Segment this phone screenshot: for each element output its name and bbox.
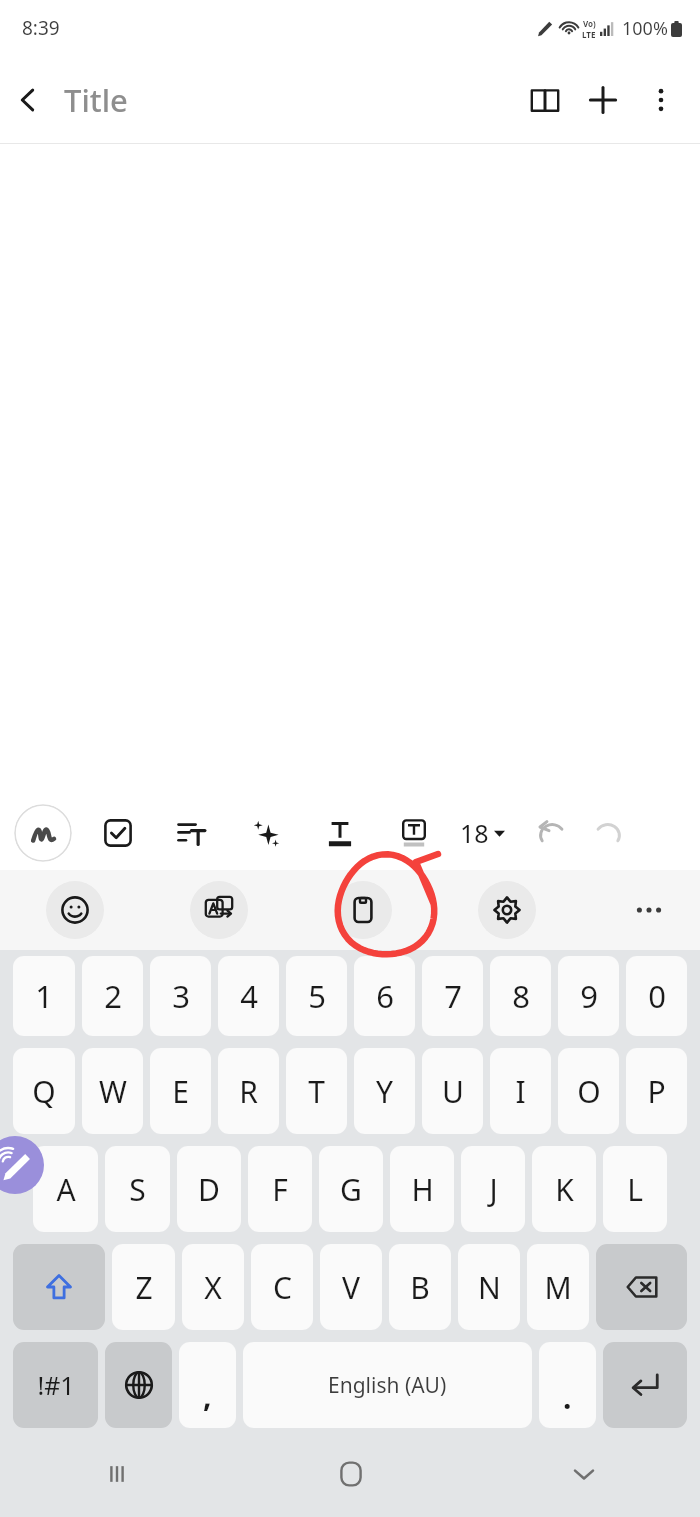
button[interactable]: Translate [190, 881, 248, 939]
staticText: R [239, 1071, 258, 1112]
button[interactable]: W [82, 1048, 143, 1134]
button[interactable]: Undo [527, 808, 577, 858]
button[interactable]: Y [354, 1048, 415, 1134]
staticText: W [99, 1071, 127, 1112]
staticText: L [627, 1169, 643, 1210]
button[interactable]: G [319, 1146, 383, 1232]
staticText: Z [135, 1267, 153, 1308]
button[interactable]: Settings [478, 881, 536, 939]
button[interactable]: Enter [603, 1342, 687, 1428]
button[interactable]: Backspace [596, 1244, 687, 1330]
staticText: S [129, 1169, 146, 1210]
button[interactable]: J [461, 1146, 525, 1232]
staticText: E [172, 1071, 189, 1112]
staticText: D [198, 1169, 220, 1210]
button[interactable]: 0 [626, 956, 687, 1036]
button[interactable]: Shift [13, 1244, 105, 1330]
button[interactable]: A [33, 1146, 98, 1232]
button[interactable]: B [389, 1244, 451, 1330]
button[interactable]: N [458, 1244, 520, 1330]
staticText: P [647, 1071, 666, 1112]
staticText: 6 [376, 975, 394, 1017]
button[interactable]: 6 [354, 956, 415, 1036]
button[interactable]: P [626, 1048, 687, 1134]
button[interactable]: S [105, 1146, 170, 1232]
button[interactable]: V [320, 1244, 382, 1330]
button[interactable]: H [390, 1146, 454, 1232]
button[interactable]: 3 [150, 956, 211, 1036]
button[interactable]: Change language [105, 1342, 172, 1428]
button[interactable]: 9 [558, 956, 619, 1036]
button[interactable]: More options [632, 71, 690, 129]
button[interactable]: Hide keyboard [467, 1430, 700, 1517]
button[interactable]: R [218, 1048, 279, 1134]
staticText: 3 [172, 975, 190, 1017]
button[interactable]: Q [13, 1048, 75, 1134]
button[interactable]: Redo [583, 808, 633, 858]
button[interactable]: Handwriting [14, 804, 72, 862]
staticText: C [273, 1267, 292, 1308]
staticText: 7 [444, 975, 462, 1017]
staticText: K [555, 1169, 574, 1210]
button[interactable]: O [558, 1048, 619, 1134]
button[interactable]: Checklist [92, 807, 144, 859]
staticText: 0 [648, 975, 666, 1017]
button[interactable]: 2 [82, 956, 143, 1036]
staticText: V [342, 1267, 360, 1308]
staticText: 100% [622, 16, 668, 41]
button[interactable]: E [150, 1048, 211, 1134]
button[interactable]: AI assist [240, 807, 292, 859]
button[interactable]: Paragraph [166, 807, 218, 859]
button[interactable]: Z [112, 1244, 175, 1330]
staticText: Title [64, 79, 128, 121]
button[interactable]: D [177, 1146, 241, 1232]
staticText: I [515, 1071, 526, 1112]
staticText: English (AU) [328, 1371, 447, 1400]
button[interactable]: K [532, 1146, 596, 1232]
button[interactable]: 18 [456, 810, 509, 856]
staticText: J [489, 1169, 498, 1210]
button[interactable]: Clipboard [334, 881, 392, 939]
button[interactable]: C [251, 1244, 313, 1330]
button[interactable]: Text style [314, 807, 366, 859]
staticText: M [544, 1267, 572, 1308]
staticText: 5 [308, 975, 326, 1017]
button[interactable]: M [527, 1244, 589, 1330]
button[interactable]: More [622, 883, 676, 937]
button[interactable]: English (AU) [243, 1342, 532, 1428]
staticText: 2 [104, 975, 122, 1017]
button[interactable]: Text box [388, 807, 440, 859]
button[interactable]: Add [574, 71, 632, 129]
button[interactable]: Reading mode [516, 71, 574, 129]
button[interactable]: I [490, 1048, 551, 1134]
staticText: U [442, 1071, 464, 1112]
button[interactable]: Recents [0, 1430, 234, 1517]
button[interactable]: 8 [490, 956, 551, 1036]
button[interactable]: T [286, 1048, 347, 1134]
button[interactable]: 5 [286, 956, 347, 1036]
staticText: A [56, 1169, 76, 1210]
button[interactable]: L [603, 1146, 667, 1232]
button[interactable]: X [182, 1244, 244, 1330]
button[interactable]: Back [0, 72, 56, 128]
button[interactable]: !#1 [13, 1342, 98, 1428]
button[interactable]: , [179, 1342, 236, 1428]
staticText: F [272, 1169, 288, 1210]
staticText: 4 [240, 975, 258, 1017]
button[interactable]: U [422, 1048, 483, 1134]
staticText: . [563, 1377, 572, 1418]
button[interactable]: Home [234, 1430, 467, 1517]
button[interactable]: 7 [422, 956, 483, 1036]
button[interactable]: Handwriting input [0, 1136, 44, 1194]
staticText: N [478, 1267, 501, 1308]
staticText: Vo) [583, 18, 596, 29]
staticText: !#1 [37, 1368, 75, 1402]
button[interactable]: 4 [218, 956, 279, 1036]
button[interactable]: Emoji [46, 881, 104, 939]
button[interactable]: 1 [13, 956, 75, 1036]
button[interactable]: . [539, 1342, 596, 1428]
staticText: 8:39 [22, 15, 60, 41]
button[interactable]: F [248, 1146, 312, 1232]
staticText: H [411, 1169, 434, 1210]
staticText: G [340, 1169, 362, 1210]
